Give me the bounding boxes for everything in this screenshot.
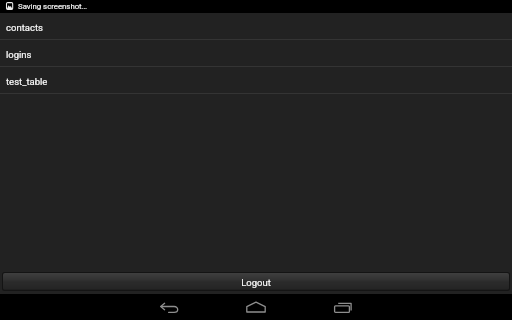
staticText: Saving screenshot… — [18, 2, 87, 11]
button[interactable]: logins — [0, 40, 512, 67]
button[interactable]: test_table — [0, 67, 512, 94]
staticText: contacts — [6, 22, 43, 33]
staticText: logins — [6, 49, 32, 60]
button[interactable]: Logout — [3, 273, 509, 290]
button[interactable]: Recent apps — [326, 294, 358, 320]
button[interactable]: Home — [240, 294, 272, 320]
staticText: test_table — [6, 76, 48, 87]
button[interactable]: Back — [153, 294, 185, 320]
button[interactable]: contacts — [0, 13, 512, 40]
staticText: Logout — [241, 277, 271, 288]
